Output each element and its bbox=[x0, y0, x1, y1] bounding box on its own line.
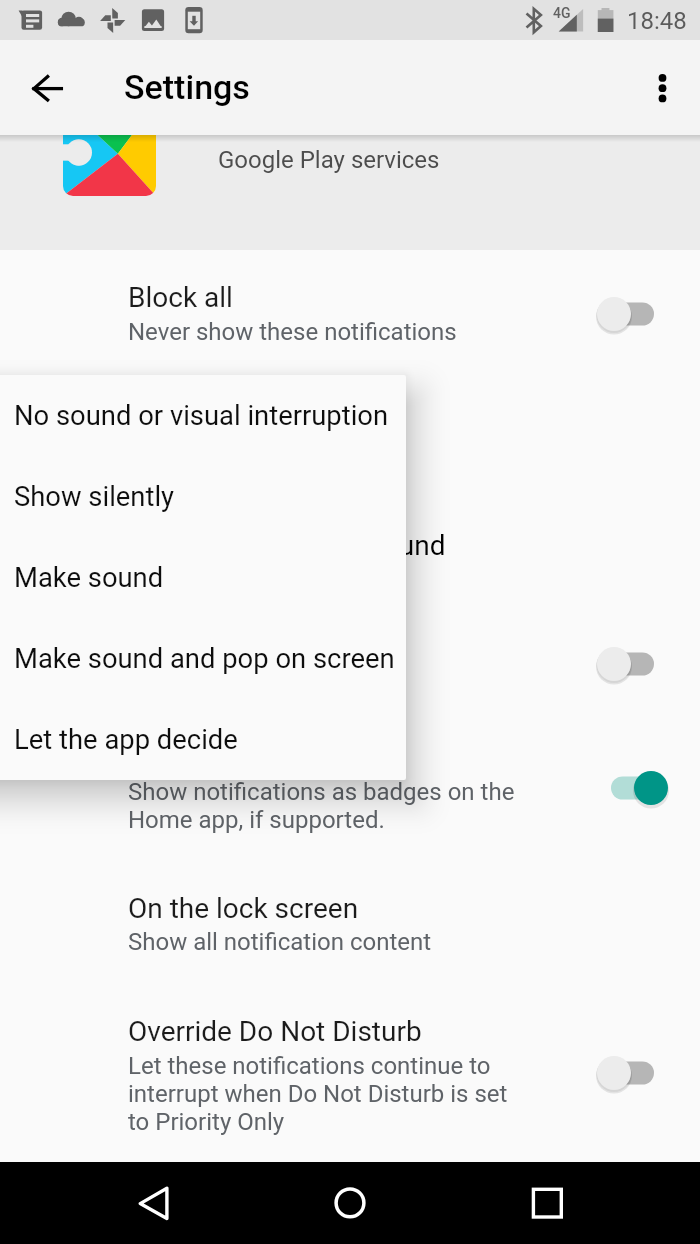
button[interactable]: Toggle off bbox=[585, 638, 671, 690]
button[interactable]: More options bbox=[634, 59, 691, 116]
staticText: Block all bbox=[128, 281, 233, 314]
button[interactable]: Vibrate bbox=[0, 614, 700, 714]
staticText: Make sound and pop on screen bbox=[14, 643, 395, 675]
staticText: Vibrate bbox=[128, 637, 217, 670]
button[interactable]: Home bbox=[317, 1170, 384, 1237]
button[interactable]: Make sound bbox=[0, 537, 406, 618]
button[interactable]: Toggle on bbox=[588, 762, 674, 814]
staticText: Override Do Not Disturb bbox=[128, 1015, 422, 1048]
button[interactable]: Let the app decide bbox=[0, 699, 406, 780]
staticText: 18:48 bbox=[627, 7, 687, 35]
button[interactable]: Recents bbox=[514, 1170, 581, 1237]
button[interactable]: Toggle off bbox=[585, 288, 671, 340]
staticText: Settings bbox=[124, 67, 250, 107]
staticText: Let these notifications continue to inte… bbox=[128, 1052, 508, 1136]
button[interactable]: Make sound and pop on screen bbox=[0, 618, 406, 699]
button[interactable]: Back bbox=[120, 1170, 187, 1237]
staticText: Never show these notifications bbox=[128, 318, 457, 346]
staticText: Importance bbox=[128, 489, 272, 522]
staticText: Show notifications as badges on the Home… bbox=[128, 778, 515, 834]
staticText: Make sound bbox=[14, 562, 164, 594]
staticText: No sound or visual interruption bbox=[14, 400, 389, 432]
staticText: Show all notification content bbox=[128, 928, 432, 956]
staticText: Google Play services bbox=[218, 146, 440, 174]
staticText: Allow notification dot bbox=[128, 738, 392, 771]
button[interactable]: Toggle off bbox=[585, 1047, 671, 1099]
staticText: On the lock screen bbox=[128, 892, 359, 925]
button[interactable]: No sound or visual interruption bbox=[0, 375, 406, 456]
button[interactable]: Google Play services bbox=[0, 135, 700, 250]
staticText: Show silently bbox=[14, 481, 175, 513]
button[interactable]: Block all bbox=[0, 258, 700, 364]
staticText: 4G bbox=[553, 5, 571, 21]
button[interactable]: Allow notification dot bbox=[0, 724, 700, 852]
staticText: Make sound bbox=[293, 529, 446, 562]
button[interactable]: Importance bbox=[0, 470, 700, 586]
button[interactable]: On the lock screen bbox=[0, 869, 700, 975]
button[interactable]: Show silently bbox=[0, 456, 406, 537]
staticText: Let the app decide bbox=[14, 724, 238, 756]
button[interactable]: Back bbox=[19, 59, 77, 117]
button[interactable]: Override Do Not Disturb bbox=[0, 998, 700, 1146]
